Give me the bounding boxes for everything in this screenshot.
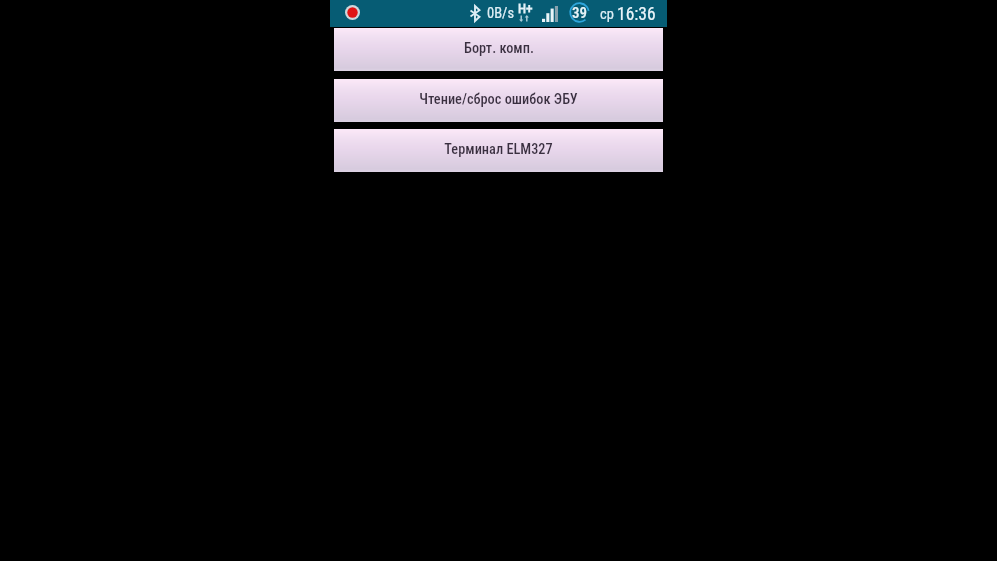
other: Bluetooth on	[470, 6, 480, 21]
staticText: H+	[518, 1, 533, 16]
button[interactable]: Чтение/сброс ошибок ЭБУ	[334, 79, 663, 122]
button[interactable]: Борт. комп.	[334, 28, 663, 71]
other: HSPA+ data	[518, 3, 534, 22]
button[interactable]: Терминал ELM327	[334, 129, 663, 172]
staticText: Чтение/сброс ошибок ЭБУ	[419, 91, 578, 108]
other: Recording	[345, 5, 360, 20]
staticText: Терминал ELM327	[444, 141, 553, 158]
staticText: 16:36	[617, 4, 656, 25]
other: Mobile signal	[542, 6, 558, 22]
staticText: 0B/s	[487, 5, 515, 22]
staticText: ср	[600, 6, 614, 23]
staticText: Борт. комп.	[464, 40, 534, 57]
staticText: 39	[572, 4, 588, 22]
other: Battery 39 percent	[569, 2, 590, 23]
